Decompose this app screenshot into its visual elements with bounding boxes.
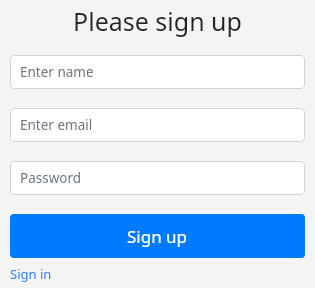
- button[interactable]: Password: [10, 161, 305, 195]
- button[interactable]: Sign up: [10, 214, 305, 258]
- button[interactable]: Enter name: [10, 55, 305, 89]
- staticText: Enter name: [20, 63, 94, 81]
- button[interactable]: Sign in: [10, 265, 52, 283]
- staticText: Please sign up: [10, 4, 305, 38]
- staticText: Sign up: [127, 225, 188, 248]
- staticText: Password: [20, 169, 82, 187]
- staticText: Enter email: [20, 116, 93, 134]
- button[interactable]: Enter email: [10, 108, 305, 142]
- staticText: Sign in: [10, 265, 52, 283]
